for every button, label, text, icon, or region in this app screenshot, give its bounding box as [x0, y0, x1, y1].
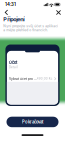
- button[interactable]: Zavřít: [53, 8, 64, 17]
- staticText: Pokračovat: [22, 119, 43, 124]
- staticText: 490,00 Kč: [37, 77, 53, 80]
- button[interactable]: Pokračovat: [6, 117, 58, 127]
- button[interactable]: Zpět: [1, 8, 12, 17]
- staticText: Detail: [9, 65, 18, 69]
- staticText: Připojení: [3, 16, 24, 23]
- staticText: Vybrat účet pro platbu: [9, 77, 37, 81]
- staticText: Účet: [9, 60, 17, 65]
- staticText: 14:31: [5, 2, 16, 7]
- staticText: Nyní propojte svůj účet s aplikací a měj…: [3, 24, 58, 32]
